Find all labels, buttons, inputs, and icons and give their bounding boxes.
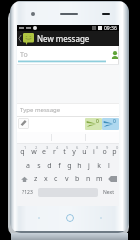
staticText: m xyxy=(96,174,103,184)
button[interactable]: Send xyxy=(102,118,119,130)
staticText: o xyxy=(102,147,107,157)
staticText: 5 xyxy=(66,145,69,150)
staticText: k xyxy=(97,161,101,171)
staticText: r xyxy=(53,147,56,157)
button[interactable]: x xyxy=(41,172,51,186)
staticText: s xyxy=(37,161,41,171)
button[interactable]: h xyxy=(74,158,84,172)
button[interactable]: 9 xyxy=(99,144,109,158)
staticText: 8 xyxy=(96,145,99,150)
staticText: e xyxy=(42,147,46,157)
staticText: d xyxy=(47,161,52,171)
staticText: 0 xyxy=(116,145,119,150)
staticText: 9 xyxy=(106,145,109,150)
button[interactable]: g xyxy=(64,158,74,172)
staticText: j xyxy=(88,161,90,171)
staticText: 7 xyxy=(86,145,89,150)
staticText: 2 xyxy=(35,145,38,150)
button[interactable]: n xyxy=(83,172,94,186)
button[interactable]: 8 xyxy=(89,144,99,158)
button[interactable]: s xyxy=(33,158,44,172)
button[interactable]: 0 xyxy=(109,144,119,158)
staticText: 0 xyxy=(113,118,116,125)
staticText: y xyxy=(72,147,76,157)
staticText: 1 xyxy=(24,145,27,150)
staticText: t xyxy=(63,147,66,157)
button[interactable]: 7 xyxy=(79,144,89,158)
button[interactable]: Pick contact xyxy=(111,51,119,59)
staticText: w xyxy=(31,147,37,157)
staticText: p xyxy=(112,147,117,157)
button[interactable]: j xyxy=(84,158,94,172)
staticText: n xyxy=(86,174,91,184)
button[interactable]: Attach xyxy=(18,118,29,129)
staticText: x xyxy=(44,174,48,184)
staticText: l xyxy=(108,161,110,171)
staticText: b xyxy=(75,174,80,184)
staticText: Type message xyxy=(20,106,61,114)
staticText: 0 xyxy=(96,118,99,125)
button[interactable]: z xyxy=(31,172,41,186)
button[interactable]: k xyxy=(94,158,104,172)
staticText: New message xyxy=(37,33,90,44)
staticText: ?123 xyxy=(22,189,33,196)
button[interactable]: v xyxy=(61,172,72,186)
button[interactable]: Next xyxy=(98,186,119,199)
button[interactable]: 6 xyxy=(69,144,79,158)
button[interactable]: Send xyxy=(85,118,102,130)
staticText: Next xyxy=(103,189,114,196)
staticText: v xyxy=(65,174,69,184)
staticText: q xyxy=(20,147,25,157)
button[interactable]: 4 xyxy=(49,144,59,158)
button[interactable]: Backspace xyxy=(105,172,119,186)
staticText: h xyxy=(77,161,82,171)
button[interactable]: c xyxy=(51,172,61,186)
staticText: 3 xyxy=(46,145,49,150)
button[interactable]: Shift xyxy=(17,172,31,186)
staticText: u xyxy=(82,147,87,157)
button[interactable]: m xyxy=(94,172,105,186)
button[interactable]: a xyxy=(22,158,33,172)
button[interactable]: 1 xyxy=(17,144,28,158)
staticText: c xyxy=(54,174,58,184)
button[interactable]: l xyxy=(104,158,114,172)
button[interactable]: d xyxy=(44,158,54,172)
staticText: g xyxy=(67,161,72,171)
staticText: 4 xyxy=(56,145,59,150)
button[interactable]: 5 xyxy=(59,144,69,158)
staticText: To xyxy=(20,50,28,60)
button[interactable]: 3 xyxy=(39,144,49,158)
button[interactable]: b xyxy=(72,172,83,186)
button[interactable]: f xyxy=(54,158,64,172)
staticText: 09:36 xyxy=(104,25,117,31)
staticText: 6 xyxy=(76,145,79,150)
staticText: f xyxy=(58,161,61,171)
button[interactable]: 2 xyxy=(28,144,39,158)
staticText: i xyxy=(93,147,95,157)
staticText: a xyxy=(26,161,30,171)
button[interactable]: Back xyxy=(17,31,37,46)
button[interactable]: ?123 xyxy=(17,186,38,199)
staticText: z xyxy=(34,174,38,184)
